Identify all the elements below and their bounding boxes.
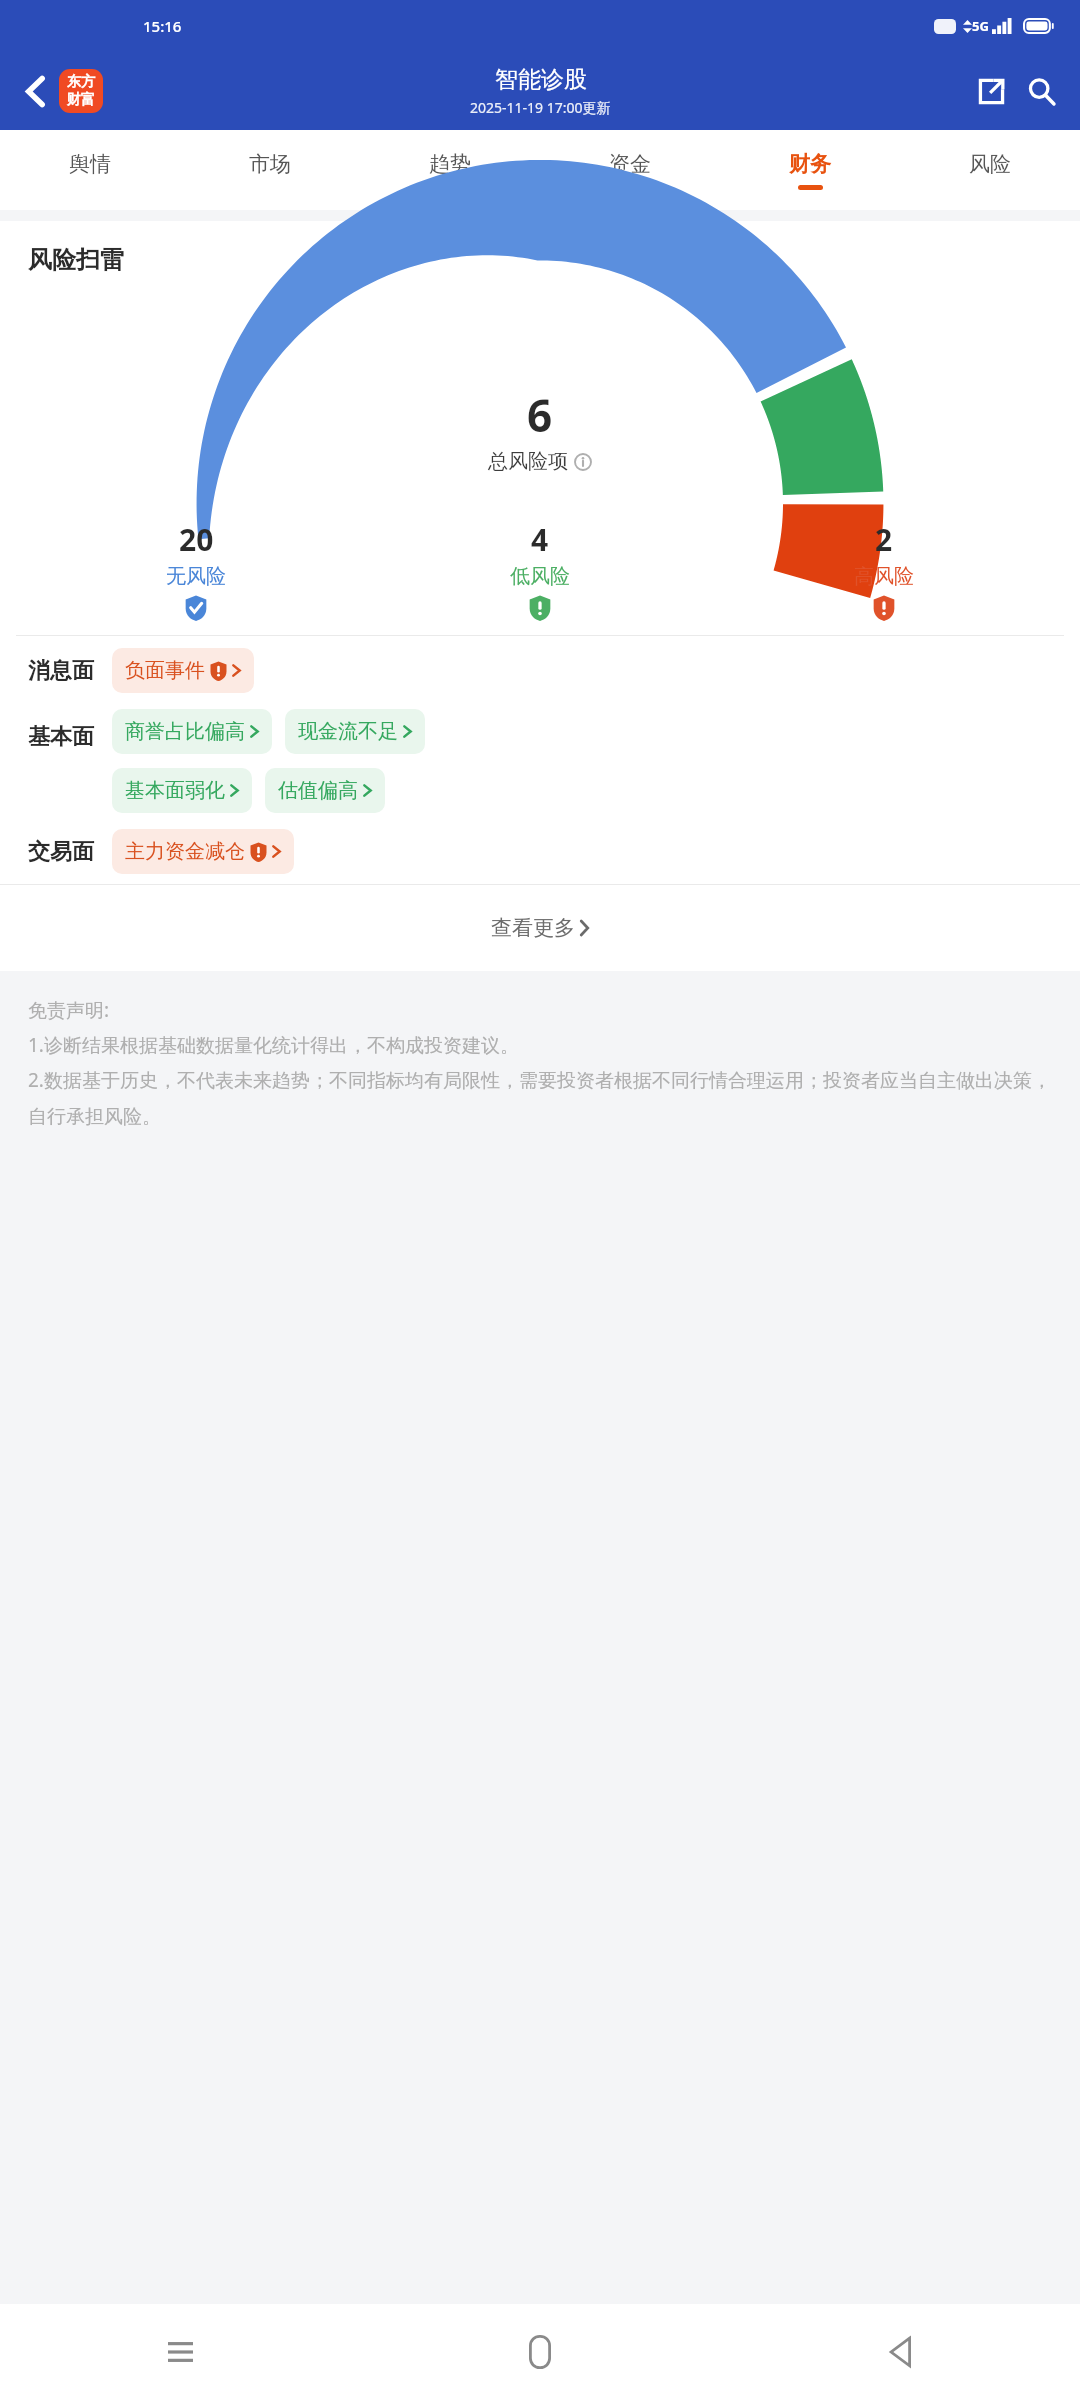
staticText: 免责声明:: [28, 997, 110, 1023]
staticText: 4: [531, 519, 549, 560]
button[interactable]: 市场: [180, 130, 360, 210]
button[interactable]: Search: [1016, 66, 1066, 116]
staticText: 舆情: [69, 151, 111, 177]
staticText: 高风险: [854, 564, 914, 589]
button[interactable]: Recents: [0, 2304, 360, 2400]
staticText: 20: [179, 519, 214, 560]
staticText: 东方: [67, 73, 95, 91]
button[interactable]: Back: [720, 2304, 1080, 2400]
staticText: 基本面: [28, 723, 94, 751]
button[interactable]: 风险: [900, 130, 1080, 210]
button[interactable]: 查看更多: [0, 885, 1080, 971]
staticText: 资金: [609, 151, 651, 177]
staticText: 无风险: [166, 564, 226, 589]
staticText: 查看更多: [491, 915, 575, 941]
staticText: 风险扫雷: [28, 245, 124, 275]
button[interactable]: 20: [24, 519, 368, 621]
button[interactable]: 商誉占比偏高: [112, 709, 272, 754]
button[interactable]: 舆情: [0, 130, 180, 210]
staticText: 1.诊断结果根据基础数据量化统计得出，不构成投资建议。: [28, 1032, 519, 1058]
staticText: 风险: [969, 151, 1011, 177]
button[interactable]: Home: [360, 2304, 720, 2400]
staticText: 现金流不足: [298, 719, 398, 744]
staticText: 2025-11-19 17:00更新: [470, 98, 611, 117]
button[interactable]: 现金流不足: [285, 709, 425, 754]
staticText: 2: [875, 519, 893, 560]
staticText: 估值偏高: [278, 778, 358, 803]
staticText: 主力资金减仓: [125, 839, 245, 864]
staticText: 15:16: [143, 16, 182, 36]
button[interactable]: 财务: [720, 130, 900, 210]
button[interactable]: 4: [368, 519, 712, 621]
button[interactable]: 资金: [540, 130, 720, 210]
staticText: 财务: [789, 151, 831, 177]
button[interactable]: Back: [12, 68, 58, 114]
button[interactable]: 趋势: [360, 130, 540, 210]
staticText: 6: [527, 385, 553, 445]
staticText: 趋势: [429, 151, 471, 177]
button[interactable]: 负面事件: [112, 648, 254, 693]
staticText: 交易面: [28, 838, 94, 866]
button[interactable]: 估值偏高: [265, 768, 385, 813]
staticText: 5G: [972, 17, 989, 35]
staticText: 2.数据基于历史，不代表未来趋势；不同指标均有局限性，需要投资者根据不同行情合理…: [28, 1067, 1054, 1129]
staticText: 消息面: [28, 657, 94, 685]
button[interactable]: 主力资金减仓: [112, 829, 294, 874]
staticText: 总风险项: [488, 449, 568, 474]
button[interactable]: Share: [966, 66, 1016, 116]
staticText: 基本面弱化: [125, 778, 225, 803]
staticText: 负面事件: [125, 658, 205, 683]
staticText: 低风险: [510, 564, 570, 589]
staticText: 商誉占比偏高: [125, 719, 245, 744]
button[interactable]: 基本面弱化: [112, 768, 252, 813]
button[interactable]: 东方财富: [59, 69, 103, 113]
staticText: 财富: [67, 91, 95, 109]
staticText: 市场: [249, 151, 291, 177]
staticText: 智能诊股: [495, 65, 587, 94]
button[interactable]: 2: [712, 519, 1056, 621]
